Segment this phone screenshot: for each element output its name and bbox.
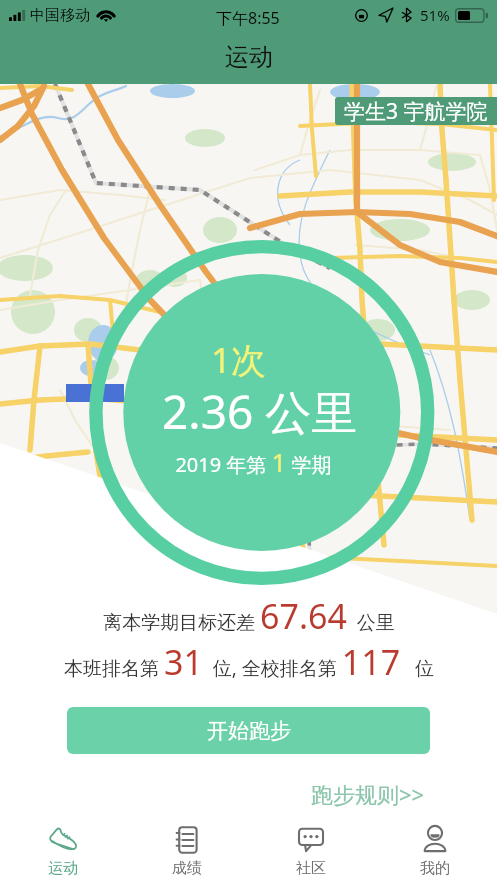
staticText: 1次 (211, 336, 267, 384)
button[interactable]: 跑步规则>> (311, 779, 425, 809)
staticText: 51% (420, 5, 450, 25)
button[interactable]: 成绩 (125, 811, 249, 883)
staticText: 本班排名第 31 位, 全校排名第 117 位 (64, 639, 434, 685)
button[interactable]: 开始跑步 (67, 707, 430, 754)
staticText: 中国移动 (30, 6, 90, 25)
staticText: 开始跑步 (207, 718, 291, 744)
staticText: 2.36 公里 (162, 380, 358, 443)
button[interactable]: 我的 (373, 811, 497, 883)
staticText: 下午8:55 (216, 7, 280, 29)
staticText: 运动 (225, 42, 273, 72)
staticText: 跑步规则>> (311, 779, 425, 809)
staticText: 社区 (296, 859, 326, 878)
button[interactable]: 运动 (0, 811, 125, 883)
staticText: 2019 年第 1 学期 (175, 444, 332, 479)
button[interactable]: 社区 (249, 811, 373, 883)
staticText: 运动 (48, 859, 78, 878)
button[interactable]: 学生3 宇航学院 (335, 97, 497, 125)
staticText: 成绩 (172, 859, 202, 878)
staticText: 我的 (420, 859, 450, 878)
staticText: 离本学期目标还差 67.64 公里 (103, 593, 395, 639)
staticText: 学生3 宇航学院 (344, 97, 488, 125)
